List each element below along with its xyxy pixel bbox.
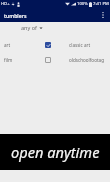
staticText: film — [4, 57, 13, 63]
staticText: 7:41 PM — [93, 1, 109, 7]
staticText: art — [4, 42, 11, 48]
button[interactable]: More options — [97, 9, 109, 21]
staticText: 100% — [77, 1, 88, 7]
staticText: any of — [21, 24, 37, 31]
staticText: tumblers — [4, 12, 27, 19]
staticText: open anytime — [11, 142, 100, 162]
staticText: HD+ — [1, 1, 10, 7]
staticText: classic art — [69, 42, 91, 48]
staticText: oldschoolfootage — [69, 57, 104, 63]
button[interactable]: open anytime — [0, 134, 110, 170]
button[interactable]: any of — [20, 22, 44, 33]
button[interactable]: film — [0, 52, 110, 67]
button[interactable]: art — [0, 37, 110, 52]
